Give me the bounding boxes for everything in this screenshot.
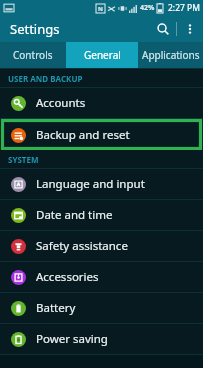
staticText: Battery	[36, 300, 76, 316]
button[interactable]: More options	[177, 16, 203, 42]
button[interactable]: Power saving	[0, 324, 203, 354]
button[interactable]: Controls	[0, 42, 66, 68]
staticText: General	[84, 48, 121, 62]
button[interactable]: Date and time	[0, 200, 203, 230]
staticText: 2:27 PM	[168, 2, 200, 14]
staticText: 42%	[140, 3, 155, 13]
button[interactable]: Accounts	[0, 88, 203, 118]
staticText: Settings	[10, 20, 60, 38]
staticText: SYSTEM	[8, 154, 39, 165]
staticText: N	[98, 5, 103, 13]
staticText: Controls	[13, 48, 53, 62]
staticText: USER AND BACKUP	[8, 73, 83, 84]
button[interactable]: Safety assistance	[0, 231, 203, 261]
button[interactable]: Backup and reset	[1, 119, 202, 150]
staticText: Accessories	[36, 269, 99, 285]
staticText: Language and input	[36, 176, 145, 192]
staticText: Applications	[142, 48, 200, 62]
staticText: Power saving	[36, 331, 108, 347]
button[interactable]: Language and input	[0, 169, 203, 199]
button[interactable]: Battery	[0, 293, 203, 323]
button[interactable]: Accessories	[0, 262, 203, 292]
button[interactable]: Search	[150, 16, 176, 42]
staticText: Safety assistance	[36, 238, 128, 254]
button[interactable]: General	[66, 42, 138, 68]
button[interactable]: Applications	[138, 42, 203, 68]
staticText: Date and time	[36, 207, 113, 223]
staticText: Backup and reset	[36, 127, 130, 143]
staticText: Accounts	[36, 95, 86, 111]
